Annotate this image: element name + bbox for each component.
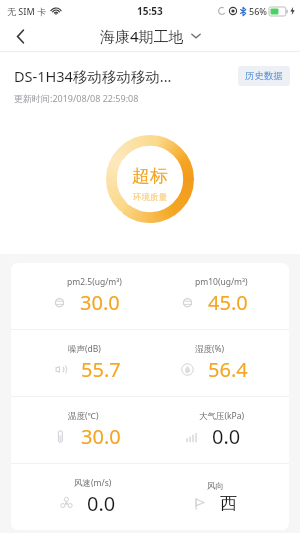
staticText: 0.0 [212,423,241,450]
button[interactable]: 大气压(kPa) [150,397,289,463]
button[interactable]: 风速(m/s) [11,464,150,530]
staticText: 海康4期工地 [100,26,184,46]
staticText: 温度(℃) [68,410,99,422]
staticText: 30.0 [81,423,121,450]
button[interactable]: 历史数据 [238,66,290,86]
staticText: 更新时间:2019/08/08 22:59:08 [14,92,139,104]
staticText: 超标 [132,165,168,188]
staticText: 45.0 [208,289,248,316]
button[interactable]: pm2.5(ug/m³) [11,263,150,329]
staticText: 西 [220,493,237,514]
staticText: 风向 [207,481,224,492]
staticText: 56% [249,5,267,17]
staticText: DS-1H34移动移动移动... [14,66,172,86]
staticText: 噪声(dB) [68,343,101,355]
staticText: 56.4 [208,356,248,383]
staticText: 风速(m/s) [74,477,112,489]
staticText: pm2.5(ug/m³) [67,276,122,288]
staticText: pm10(ug/m³) [195,276,248,288]
button[interactable]: pm10(ug/m³) [150,263,289,329]
button[interactable]: 温度(℃) [11,397,150,463]
staticText: 大气压(kPa) [199,410,245,422]
button[interactable]: 噪声(dB) [11,330,150,396]
staticText: 30.0 [80,289,120,316]
button[interactable]: 海康4期工地 [100,26,201,46]
staticText: 无 SIM 卡 [7,5,47,17]
button[interactable]: Back [0,21,40,51]
staticText: 0.0 [87,490,116,517]
staticText: 环境质量 [133,192,167,203]
staticText: 历史数据 [245,70,283,82]
button[interactable]: 风向 [150,464,289,530]
button[interactable]: 湿度(%) [150,330,289,396]
staticText: 湿度(%) [195,343,225,355]
staticText: 55.7 [81,356,121,383]
staticText: 15:53 [137,4,163,18]
